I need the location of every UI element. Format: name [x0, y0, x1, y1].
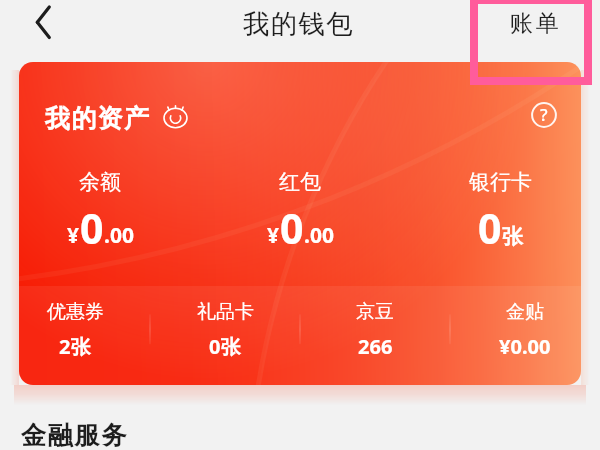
- staticText: ¥: [67, 221, 80, 250]
- staticText: 京豆: [356, 300, 394, 324]
- staticText: 金融服务: [21, 420, 129, 450]
- staticText: 0: [280, 200, 304, 256]
- button[interactable]: 京豆: [300, 300, 450, 360]
- staticText: ¥: [267, 221, 280, 250]
- button[interactable]: 余额: [0, 169, 200, 256]
- button[interactable]: 红包: [200, 169, 400, 256]
- button[interactable]: 银行卡: [400, 169, 600, 256]
- staticText: 账单: [510, 9, 562, 38]
- staticText: 266: [358, 333, 393, 360]
- staticText: 我的资产: [45, 103, 151, 134]
- staticText: 0: [478, 200, 502, 256]
- staticText: 优惠券: [47, 300, 104, 324]
- staticText: ?: [540, 103, 548, 126]
- staticText: 金贴: [506, 300, 544, 324]
- staticText: ¥0.00: [499, 333, 551, 360]
- button[interactable]: [19, 62, 581, 385]
- button[interactable]: Back: [16, 0, 62, 46]
- staticText: 礼品卡: [197, 300, 254, 324]
- button[interactable]: 账单: [470, 0, 592, 85]
- staticText: 0: [80, 200, 104, 256]
- staticText: 红包: [279, 169, 321, 195]
- staticText: 余额: [79, 169, 121, 195]
- button[interactable]: Toggle balance visibility: [162, 103, 189, 130]
- staticText: 张: [502, 224, 523, 250]
- staticText: 我的钱包: [243, 7, 354, 40]
- staticText: 2张: [59, 333, 91, 360]
- staticText: 银行卡: [469, 169, 532, 195]
- button[interactable]: 礼品卡: [150, 300, 300, 360]
- staticText: .00: [104, 221, 134, 250]
- button[interactable]: 优惠券: [0, 300, 150, 360]
- staticText: .00: [304, 221, 334, 250]
- button[interactable]: 金贴: [450, 300, 600, 360]
- button[interactable]: Help: [531, 102, 557, 128]
- staticText: 0张: [209, 333, 241, 360]
